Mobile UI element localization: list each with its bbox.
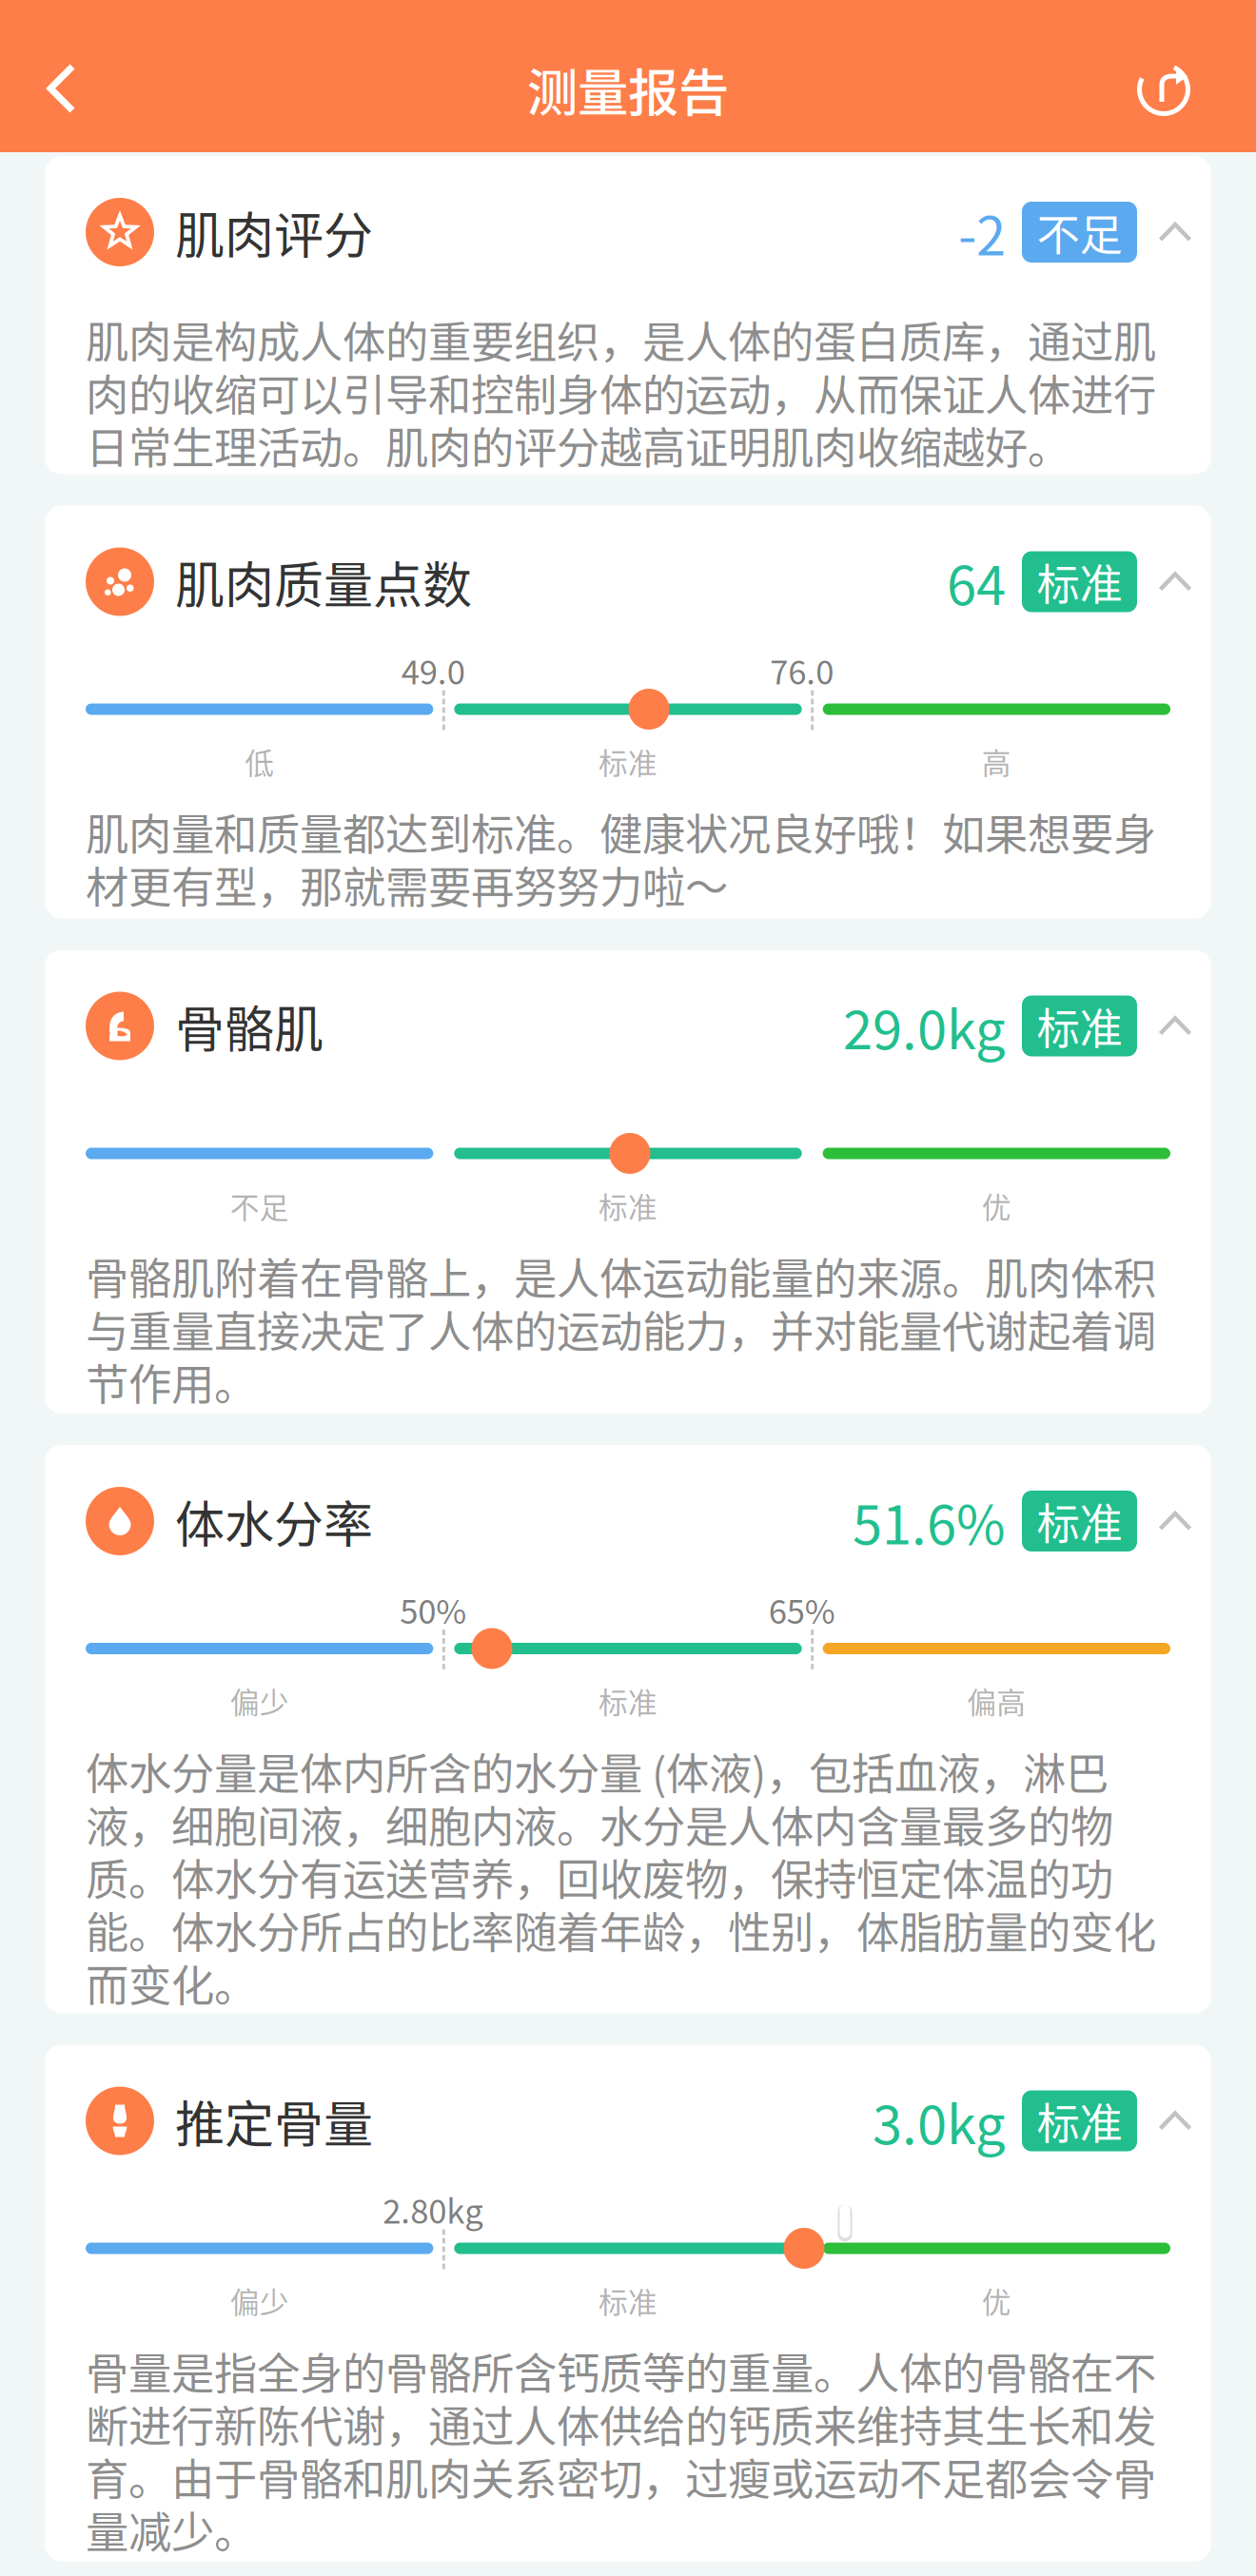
staticText: 49.0	[401, 646, 465, 694]
staticText: 骨量是指全身的骨骼所含钙质等的重量。人体的骨骼在不断进行新陈代谢，通过人体供给的…	[86, 2340, 1156, 2561]
staticText: 标准	[1037, 550, 1122, 613]
button[interactable]: 骨骼肌	[45, 950, 1211, 1102]
staticText: 体水分量是体内所含的水分量 (体液)，包括血液，淋巴液，细胞间液，细胞内液。水分…	[86, 1740, 1156, 2014]
staticText: 标准	[1037, 995, 1122, 1057]
staticText: 不足	[1037, 201, 1122, 263]
staticText: 64	[947, 543, 1006, 620]
staticText: 偏高	[967, 1680, 1026, 1722]
staticText: 低	[245, 740, 274, 783]
staticText: 29.0kg	[843, 987, 1006, 1065]
staticText: 高	[982, 740, 1011, 783]
staticText: 76.0	[770, 646, 834, 694]
button[interactable]: 推定骨量	[45, 2045, 1211, 2197]
button[interactable]: 肌肉质量点数	[45, 506, 1211, 658]
staticText: 2.80kg	[383, 2185, 484, 2233]
staticText: 标准	[599, 1185, 657, 1227]
staticText: 65%	[769, 1586, 835, 1633]
staticText: 骨骼肌附着在骨骼上，是人体运动能量的来源。肌肉体积与重量直接决定了人体的运动能力…	[86, 1245, 1156, 1413]
staticText: 肌肉是构成人体的重要组织，是人体的蛋白质库，通过肌肉的收缩可以引导和控制身体的运…	[86, 308, 1156, 476]
button[interactable]: 体水分率	[45, 1445, 1211, 1597]
staticText: 偏少	[230, 1680, 289, 1722]
button[interactable]: Back	[33, 53, 111, 124]
staticText: -2	[958, 194, 1006, 271]
staticText: 标准	[599, 740, 657, 783]
staticText: 3.0kg	[873, 2082, 1006, 2159]
staticText: 标准	[1037, 1490, 1122, 1552]
staticText: 标准	[599, 1680, 657, 1722]
staticText: 肌肉评分	[175, 196, 373, 268]
staticText: 骨骼肌	[175, 990, 324, 1062]
button[interactable]: Share	[1126, 51, 1202, 127]
staticText: 肌肉量和质量都达到标准。健康状况良好哦！如果想要身材更有型，那就需要再努努力啦～	[86, 800, 1156, 916]
staticText: 优	[982, 2279, 1011, 2322]
staticText: 偏少	[230, 2279, 289, 2322]
staticText: 不足	[230, 1185, 289, 1227]
button[interactable]: 肌肉评分	[45, 156, 1211, 308]
staticText: 测量报告	[527, 53, 729, 126]
staticText: 51.6%	[853, 1483, 1006, 1560]
staticText: 推定骨量	[175, 2085, 373, 2157]
staticText: 体水分率	[175, 1485, 373, 1557]
staticText: 优	[982, 1185, 1011, 1227]
staticText: 50%	[400, 1586, 467, 1633]
staticText: 标准	[599, 2279, 657, 2322]
staticText: 肌肉质量点数	[175, 546, 472, 618]
staticText: 标准	[1037, 2090, 1122, 2152]
